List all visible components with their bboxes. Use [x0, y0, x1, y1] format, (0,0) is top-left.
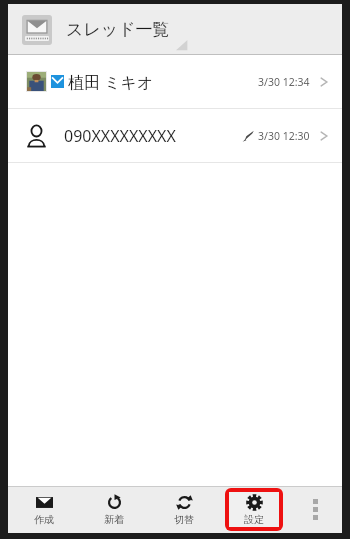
- staticText: 切替: [174, 513, 194, 526]
- staticText: 新着: [104, 513, 124, 526]
- button[interactable]: 090XXXXXXXXX: [8, 109, 342, 163]
- button[interactable]: 設定: [229, 492, 279, 527]
- staticText: スレッド一覧: [66, 19, 170, 40]
- staticText: 3/30 12:34: [258, 75, 310, 89]
- staticText: 植田 ミキオ: [68, 71, 258, 93]
- button[interactable]: 植田 ミキオ: [8, 55, 342, 109]
- staticText: 設定: [244, 513, 264, 526]
- button[interactable]: 作成: [8, 486, 79, 533]
- button[interactable]: More options: [289, 486, 342, 533]
- staticText: 作成: [34, 513, 54, 526]
- staticText: 090XXXXXXXXX: [64, 125, 242, 147]
- button[interactable]: 新着: [79, 486, 149, 533]
- button[interactable]: 切替: [149, 486, 219, 533]
- staticText: 3/30 12:30: [258, 129, 310, 143]
